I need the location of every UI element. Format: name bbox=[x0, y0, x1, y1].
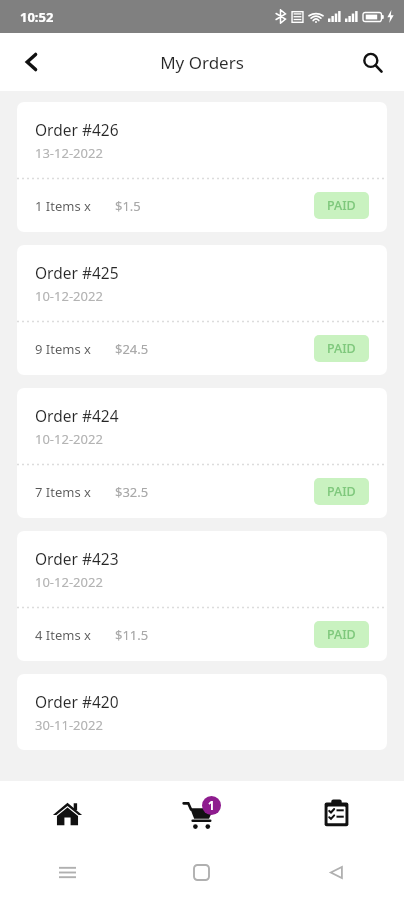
staticText: 4 Items x bbox=[35, 626, 91, 644]
staticText: $24.5 bbox=[115, 340, 149, 358]
button[interactable]: Order #423 bbox=[17, 531, 387, 661]
staticText: Order #420 bbox=[35, 691, 119, 712]
staticText: 10-12-2022 bbox=[35, 287, 103, 305]
button[interactable]: Back bbox=[8, 38, 56, 86]
staticText: 1 bbox=[208, 798, 215, 814]
staticText: Order #426 bbox=[35, 119, 119, 140]
staticText: Order #425 bbox=[35, 262, 119, 283]
button[interactable]: PAID bbox=[314, 335, 369, 362]
staticText: 1 Items x bbox=[35, 197, 91, 215]
button[interactable]: Orders bbox=[269, 781, 404, 845]
staticText: 10:52 bbox=[20, 8, 54, 26]
button[interactable]: Order #425 bbox=[17, 245, 387, 375]
staticText: 13-12-2022 bbox=[35, 144, 103, 162]
staticText: $1.5 bbox=[115, 197, 141, 215]
staticText: 9 Items x bbox=[35, 340, 91, 358]
button[interactable]: Cart, 1 item bbox=[134, 781, 269, 845]
button[interactable]: Order #424 bbox=[17, 388, 387, 518]
staticText: My Orders bbox=[0, 51, 404, 74]
staticText: Order #423 bbox=[35, 548, 119, 569]
staticText: PAID bbox=[327, 197, 356, 214]
staticText: 10-12-2022 bbox=[35, 430, 103, 448]
button[interactable]: Search bbox=[350, 40, 394, 84]
button[interactable]: Back bbox=[269, 845, 404, 900]
staticText: Order #424 bbox=[35, 405, 119, 426]
staticText: 7 Items x bbox=[35, 483, 91, 501]
staticText: PAID bbox=[327, 483, 356, 500]
button[interactable]: Home bbox=[0, 781, 134, 845]
button[interactable]: PAID bbox=[314, 478, 369, 505]
staticText: PAID bbox=[327, 626, 356, 643]
staticText: $32.5 bbox=[115, 483, 149, 501]
button[interactable]: Home bbox=[134, 845, 269, 900]
staticText: 30-11-2022 bbox=[35, 716, 103, 734]
button[interactable]: Order #420 bbox=[17, 674, 387, 750]
button[interactable]: PAID bbox=[314, 621, 369, 648]
button[interactable]: Recents bbox=[0, 845, 134, 900]
staticText: 10-12-2022 bbox=[35, 573, 103, 591]
button[interactable]: Order #426 bbox=[17, 102, 387, 232]
staticText: PAID bbox=[327, 340, 356, 357]
staticText: $11.5 bbox=[115, 626, 149, 644]
button[interactable]: PAID bbox=[314, 192, 369, 219]
